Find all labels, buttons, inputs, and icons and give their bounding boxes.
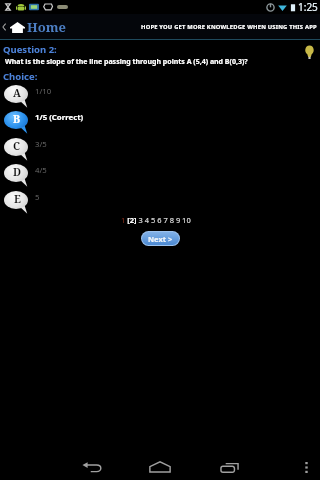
staticText: HOPE YOU GET MORE KNOWLEDGE WHEN USING T…	[141, 23, 317, 31]
staticText: 1 [2] 3 4 5 6 7 8 9 10	[121, 215, 191, 225]
staticText: Next >	[148, 234, 173, 244]
staticText: 1/5 (Correct)	[35, 112, 84, 123]
staticText: E	[14, 192, 21, 206]
staticText: 4/5	[35, 165, 47, 176]
button[interactable]: Home	[149, 461, 171, 473]
staticText: Home	[27, 18, 66, 36]
staticText: 3/5	[35, 139, 47, 150]
staticText: Choice:	[3, 70, 38, 83]
staticText: D	[13, 165, 22, 179]
button[interactable]: More options	[299, 457, 313, 477]
staticText: 1:25	[298, 0, 318, 14]
staticText: Question 2:	[3, 43, 57, 56]
button[interactable]: Home	[0, 18, 66, 36]
button[interactable]: C	[0, 135, 320, 161]
staticText: What is the slope of the line passing th…	[5, 57, 248, 67]
button[interactable]: D	[0, 161, 320, 187]
staticText: A	[13, 86, 21, 100]
staticText: C	[13, 139, 21, 153]
button[interactable]: A	[0, 82, 320, 108]
button[interactable]: B	[0, 108, 320, 134]
button[interactable]: E	[0, 188, 320, 214]
staticText: 1/10	[35, 86, 52, 97]
button[interactable]: Hint	[304, 45, 315, 59]
staticText: 5	[35, 192, 40, 203]
button[interactable]: Recent apps	[220, 461, 239, 473]
button[interactable]: Next >	[142, 232, 179, 245]
staticText: B	[13, 112, 21, 126]
button[interactable]: Back	[78, 462, 104, 474]
